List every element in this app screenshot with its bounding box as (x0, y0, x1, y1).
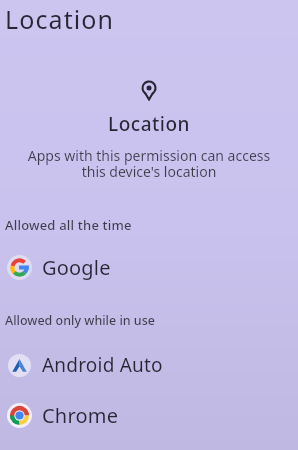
staticText: Android Auto (42, 352, 163, 378)
staticText: Apps with this permission can access thi… (0, 146, 298, 181)
staticText: Chrome (42, 402, 119, 428)
staticText: Allowed all the time (5, 216, 132, 234)
button[interactable]: Google (0, 254, 298, 280)
staticText: Location (0, 111, 298, 137)
button[interactable]: Android Auto (0, 352, 298, 378)
staticText: Google (42, 254, 111, 280)
button[interactable]: Chrome (0, 402, 298, 428)
staticText: Allowed only while in use (5, 312, 155, 329)
staticText: Location (5, 2, 115, 36)
